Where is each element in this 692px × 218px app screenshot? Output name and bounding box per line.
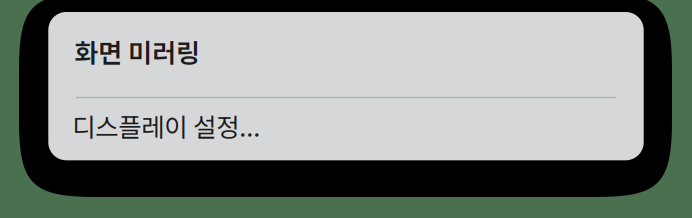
button[interactable]: 디스플레이 설정... (48, 97, 644, 160)
button[interactable]: 화면 미러링 (48, 12, 644, 97)
staticText: 화면 미러링 (74, 33, 200, 70)
staticText: 디스플레이 설정... (72, 107, 260, 144)
